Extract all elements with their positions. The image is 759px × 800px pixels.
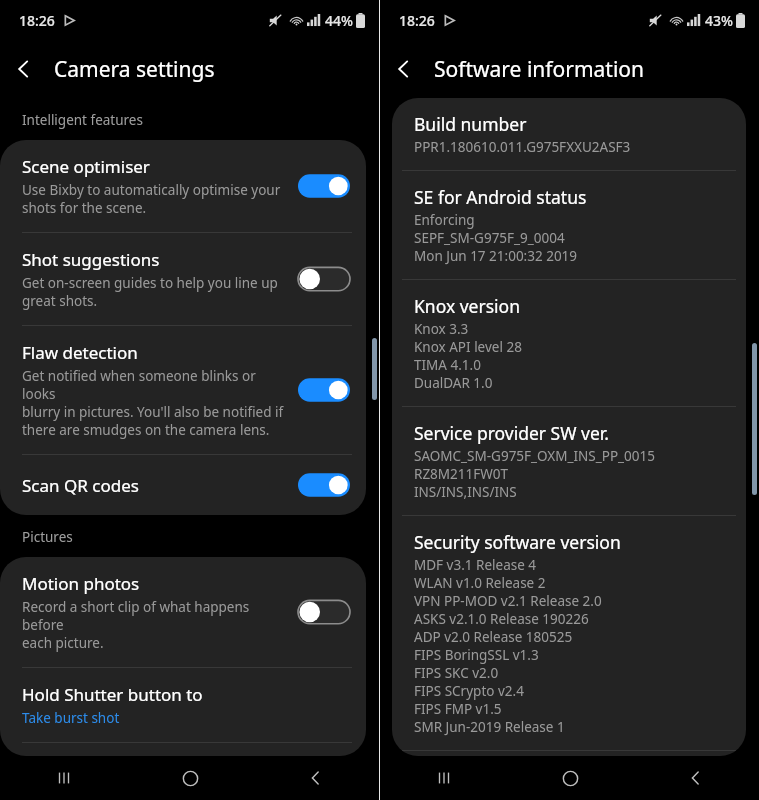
button[interactable] — [298, 375, 350, 405]
staticText: FIPS SCrypto v2.4 — [414, 682, 524, 700]
button[interactable]: Scan QR codes — [0, 455, 366, 515]
button[interactable]: Back — [380, 45, 428, 93]
staticText: INS/INS,INS/INS — [414, 483, 517, 501]
staticText: Scene optimiser — [22, 155, 150, 178]
staticText: Knox API level 28 — [414, 338, 522, 356]
button[interactable]: Build number — [392, 98, 746, 170]
staticText: Security software version — [414, 530, 621, 554]
button[interactable]: Home — [507, 756, 633, 800]
button[interactable]: Knox version — [392, 280, 746, 406]
button[interactable]: Hold Shutter button to — [0, 668, 366, 742]
staticText: Camera settings — [54, 55, 215, 84]
staticText: Build number — [414, 112, 527, 136]
staticText: WLAN v1.0 Release 2 — [414, 574, 546, 592]
staticText: SAOMC_SM-G975F_OXM_INS_PP_0015 — [414, 447, 655, 465]
button[interactable]: Back — [633, 756, 759, 800]
staticText: Pictures — [22, 528, 73, 546]
staticText: Hold Shutter button to — [22, 683, 203, 706]
button[interactable]: Android security patch level — [392, 751, 746, 756]
staticText: Service provider SW ver. — [414, 421, 609, 445]
staticText: Enforcing — [414, 211, 475, 229]
staticText: Get notified when someone blinks or look… — [22, 367, 288, 439]
staticText: FIPS BoringSSL v1.3 — [414, 646, 539, 664]
button[interactable]: Recents — [0, 756, 127, 800]
button[interactable]: Back — [0, 45, 48, 93]
button[interactable]: Recents — [380, 756, 507, 800]
button[interactable]: Save options — [0, 743, 366, 756]
button[interactable] — [298, 470, 350, 500]
staticText: Use Bixby to automatically optimise your… — [22, 181, 281, 217]
staticText: Software information — [434, 55, 644, 84]
button[interactable] — [298, 171, 350, 201]
staticText: FIPS SKC v2.0 — [414, 664, 499, 682]
staticText: Knox 3.3 — [414, 320, 469, 338]
staticText: Mon Jun 17 21:00:32 2019 — [414, 247, 578, 265]
staticText: Get on-screen guides to help you line up… — [22, 274, 278, 310]
button[interactable]: Back — [253, 756, 379, 800]
staticText: Take burst shot — [22, 709, 120, 727]
staticText: PPR1.180610.011.G975FXXU2ASF3 — [414, 138, 631, 156]
button[interactable]: Shot suggestions — [0, 233, 366, 325]
staticText: 18:26 — [399, 11, 435, 30]
staticText: SE for Android status — [414, 185, 587, 209]
button[interactable]: Home — [127, 756, 253, 800]
staticText: Scan QR codes — [22, 474, 139, 497]
staticText: SEPF_SM-G975F_9_0004 — [414, 229, 565, 247]
button[interactable]: SE for Android status — [392, 171, 746, 279]
staticText: MDF v3.1 Release 4 — [414, 556, 537, 574]
staticText: Shot suggestions — [22, 248, 160, 271]
staticText: TIMA 4.1.0 — [414, 356, 481, 374]
staticText: Record a short clip of what happens befo… — [22, 598, 288, 652]
staticText: FIPS FMP v1.5 — [414, 700, 502, 718]
button[interactable] — [298, 597, 350, 627]
staticText: 43% — [705, 11, 733, 30]
staticText: ASKS v2.1.0 Release 190226 — [414, 610, 589, 628]
staticText: SMR Jun-2019 Release 1 — [414, 718, 565, 736]
staticText: RZ8M211FW0T — [414, 465, 509, 483]
button[interactable]: Scene optimiser — [0, 140, 366, 232]
staticText: DualDAR 1.0 — [414, 374, 493, 392]
staticText: 44% — [325, 11, 353, 30]
button[interactable]: Motion photos — [0, 557, 366, 667]
staticText: Knox version — [414, 294, 520, 318]
staticText: Motion photos — [22, 572, 140, 595]
staticText: 18:26 — [19, 11, 55, 30]
button[interactable]: Flaw detection — [0, 326, 366, 454]
button[interactable]: Security software version — [392, 516, 746, 750]
staticText: Flaw detection — [22, 341, 138, 364]
staticText: VPN PP-MOD v2.1 Release 2.0 — [414, 592, 602, 610]
button[interactable]: Service provider SW ver. — [392, 407, 746, 515]
staticText: Intelligent features — [22, 111, 143, 129]
button[interactable] — [298, 264, 350, 294]
staticText: ADP v2.0 Release 180525 — [414, 628, 573, 646]
